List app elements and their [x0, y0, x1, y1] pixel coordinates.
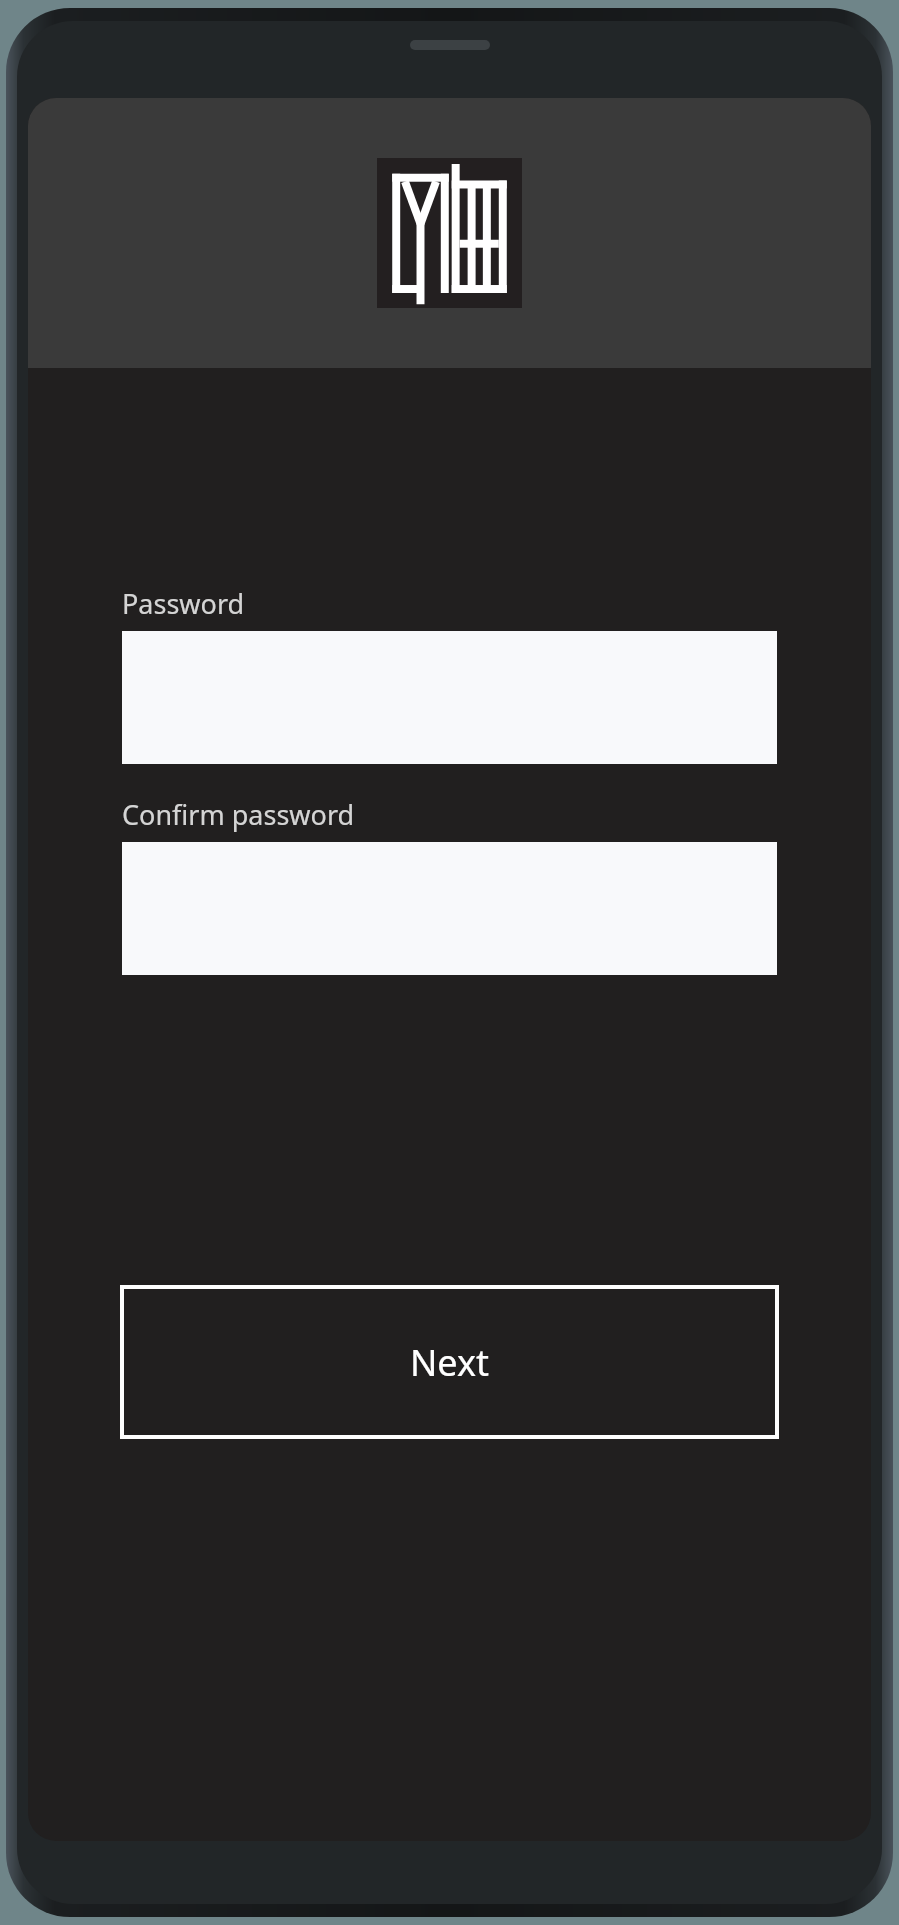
staticText: Next — [410, 1338, 489, 1387]
staticText: Password — [122, 585, 245, 622]
staticText: Confirm password — [122, 796, 355, 833]
button[interactable]: Next — [122, 1287, 777, 1437]
